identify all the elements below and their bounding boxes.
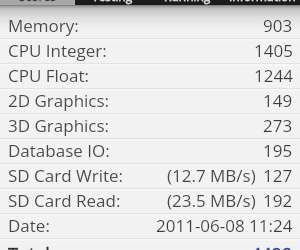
- button[interactable]: Date:: [0, 213, 300, 238]
- staticText: Information: [229, 0, 296, 4]
- staticText: (23.5 MB/s): [167, 189, 256, 212]
- staticText: 4499: [251, 242, 293, 250]
- button[interactable]: CPU Integer:: [0, 38, 300, 63]
- staticText: Scores: [19, 0, 56, 4]
- button[interactable]: 2D Graphics:: [0, 88, 300, 113]
- staticText: SD Card Write:: [8, 164, 123, 187]
- button[interactable]: Information: [225, 0, 300, 5]
- staticText: 3D Graphics:: [8, 114, 110, 137]
- button[interactable]: Scores: [0, 0, 75, 5]
- button[interactable]: CPU Float:: [0, 63, 300, 88]
- button[interactable]: 3D Graphics:: [0, 113, 300, 138]
- staticText: 273: [263, 114, 293, 137]
- button[interactable]: Running: [150, 0, 225, 5]
- button[interactable]: Total:: [0, 238, 300, 250]
- staticText: Database IO:: [8, 139, 110, 162]
- staticText: 127: [263, 164, 293, 187]
- staticText: Total:: [8, 242, 55, 250]
- staticText: 903: [263, 14, 293, 37]
- button[interactable]: Testing: [75, 0, 150, 5]
- staticText: 1244: [254, 64, 293, 87]
- button[interactable]: Memory:: [0, 13, 300, 38]
- staticText: Testing: [92, 0, 133, 4]
- button[interactable]: SD Card Write:: [0, 163, 300, 188]
- staticText: Running: [164, 0, 211, 4]
- staticText: 2011-06-08 11:24: [156, 214, 293, 237]
- staticText: 1405: [254, 39, 293, 62]
- staticText: 195: [263, 139, 293, 162]
- staticText: CPU Integer:: [8, 39, 107, 62]
- staticText: Memory:: [8, 14, 79, 37]
- staticText: SD Card Read:: [8, 189, 121, 212]
- staticText: CPU Float:: [8, 64, 90, 87]
- button[interactable]: Database IO:: [0, 138, 300, 163]
- staticText: (12.7 MB/s): [167, 164, 256, 187]
- staticText: 149: [263, 89, 293, 112]
- button[interactable]: SD Card Read:: [0, 188, 300, 213]
- staticText: 192: [263, 189, 293, 212]
- staticText: 2D Graphics:: [8, 89, 110, 112]
- staticText: Date:: [8, 214, 50, 237]
